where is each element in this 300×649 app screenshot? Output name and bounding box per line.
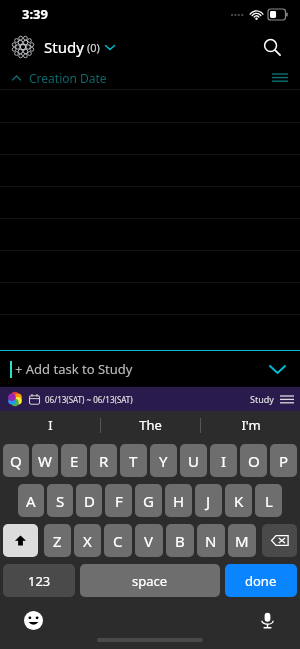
button[interactable]: A xyxy=(18,484,44,517)
button[interactable]: N xyxy=(197,524,225,557)
other: Menu xyxy=(272,73,288,83)
button[interactable]: C xyxy=(104,524,132,557)
button[interactable]: Backspace xyxy=(262,524,297,557)
staticText: A xyxy=(26,491,36,511)
staticText: F xyxy=(115,491,123,511)
staticText: N xyxy=(205,531,217,551)
staticText: O xyxy=(248,451,260,471)
button[interactable]: F xyxy=(105,484,132,517)
staticText: C xyxy=(113,531,123,551)
button[interactable]: Emoji xyxy=(20,607,46,633)
staticText: The xyxy=(139,416,162,434)
button[interactable]: I'm xyxy=(201,411,300,439)
staticText: space xyxy=(132,572,168,590)
staticText: + Add task to Study xyxy=(15,360,133,378)
button[interactable]: H xyxy=(165,484,192,517)
button[interactable]: Color xyxy=(6,390,24,408)
button[interactable]: Creation Date xyxy=(0,66,300,89)
staticText: 3:39 xyxy=(22,5,48,23)
button[interactable]: T xyxy=(120,444,147,477)
staticText: V xyxy=(144,531,154,551)
staticText: G xyxy=(143,491,154,511)
button[interactable]: 123 xyxy=(3,564,75,597)
staticText: K xyxy=(234,491,244,511)
button[interactable]: Study xyxy=(44,33,115,61)
staticText: Q xyxy=(10,451,22,471)
button[interactable]: U xyxy=(180,444,207,477)
staticText: I xyxy=(221,451,227,471)
staticText: (0) xyxy=(87,40,100,55)
button[interactable]: I xyxy=(210,444,237,477)
button[interactable]: Study xyxy=(250,393,294,405)
button[interactable]: X xyxy=(74,524,101,557)
staticText: I'm xyxy=(241,416,261,434)
staticText: U xyxy=(188,451,199,471)
staticText: P xyxy=(279,451,289,471)
button[interactable]: V xyxy=(135,524,163,557)
button[interactable]: S xyxy=(47,484,73,517)
button[interactable]: J xyxy=(195,484,222,517)
staticText: J xyxy=(206,491,211,511)
button[interactable]: P xyxy=(270,444,297,477)
staticText: L xyxy=(265,491,273,511)
button[interactable]: + Add task to Study xyxy=(0,351,300,387)
staticText: X xyxy=(83,531,92,551)
staticText: T xyxy=(129,451,138,471)
staticText: D xyxy=(84,491,95,511)
staticText: Study xyxy=(44,37,84,57)
staticText: Z xyxy=(53,531,62,551)
staticText: 123 xyxy=(28,572,51,590)
button[interactable]: K xyxy=(225,484,252,517)
staticText: done xyxy=(245,572,277,590)
staticText: H xyxy=(173,491,185,511)
button[interactable]: 06/13(SAT) ~ 06/13(SAT) xyxy=(29,394,133,405)
button[interactable]: Voice input xyxy=(254,607,280,633)
staticText: M xyxy=(235,531,249,551)
button[interactable]: Shift xyxy=(3,524,38,557)
staticText: R xyxy=(99,451,109,471)
button[interactable]: Collapse xyxy=(264,356,290,382)
staticText: E xyxy=(70,451,79,471)
button[interactable]: Y xyxy=(150,444,177,477)
staticText: W xyxy=(38,451,52,471)
other: List xyxy=(280,395,294,404)
staticText: Study xyxy=(250,393,274,405)
button[interactable]: done xyxy=(225,564,297,597)
button[interactable]: W xyxy=(32,444,58,477)
button[interactable]: Q xyxy=(3,444,29,477)
button[interactable]: D xyxy=(76,484,102,517)
button[interactable]: M xyxy=(228,524,256,557)
staticText: I xyxy=(48,416,53,434)
button[interactable]: The xyxy=(101,411,200,439)
staticText: 06/13(SAT) ~ 06/13(SAT) xyxy=(45,394,133,405)
staticText: B xyxy=(175,531,185,551)
button[interactable]: Z xyxy=(44,524,71,557)
button[interactable]: B xyxy=(166,524,194,557)
button[interactable]: I xyxy=(0,411,100,439)
staticText: Creation Date xyxy=(29,70,107,86)
button[interactable]: L xyxy=(255,484,282,517)
staticText: Y xyxy=(159,451,168,471)
button[interactable]: G xyxy=(135,484,162,517)
button[interactable]: E xyxy=(61,444,87,477)
button[interactable]: space xyxy=(80,564,220,597)
button[interactable]: O xyxy=(240,444,267,477)
button[interactable]: R xyxy=(90,444,117,477)
button[interactable]: Search xyxy=(256,31,288,63)
staticText: S xyxy=(56,491,65,511)
